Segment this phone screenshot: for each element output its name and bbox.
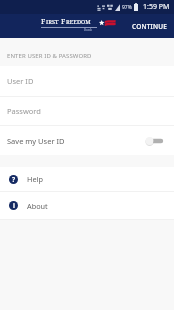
staticText: About bbox=[27, 201, 48, 211]
button[interactable]: User ID bbox=[0, 66, 174, 96]
button[interactable]: Save my User ID toggle bbox=[144, 133, 164, 149]
button[interactable]: CONTINUE bbox=[125, 17, 174, 36]
staticText: CONTINUE bbox=[132, 22, 168, 31]
button[interactable]: Save my User ID bbox=[0, 126, 174, 155]
button[interactable]: ? bbox=[0, 167, 174, 191]
staticText: 1:59 PM bbox=[143, 2, 170, 12]
staticText: ENTER USER ID & PASSWORD bbox=[7, 52, 92, 60]
staticText: F bbox=[61, 16, 66, 26]
button[interactable]: Password bbox=[0, 97, 174, 125]
staticText: REEDOM bbox=[66, 18, 91, 26]
staticText: i bbox=[13, 201, 15, 210]
staticText: F bbox=[41, 16, 46, 26]
staticText: ? bbox=[12, 175, 16, 184]
staticText: 97% bbox=[122, 4, 132, 11]
staticText: Help bbox=[27, 174, 43, 184]
staticText: User ID bbox=[7, 76, 34, 86]
staticText: Save my User ID bbox=[7, 136, 65, 146]
button[interactable]: i bbox=[0, 192, 174, 219]
staticText: Bank bbox=[84, 28, 92, 32]
staticText: Password bbox=[7, 106, 41, 116]
staticText: IRST bbox=[46, 18, 59, 26]
